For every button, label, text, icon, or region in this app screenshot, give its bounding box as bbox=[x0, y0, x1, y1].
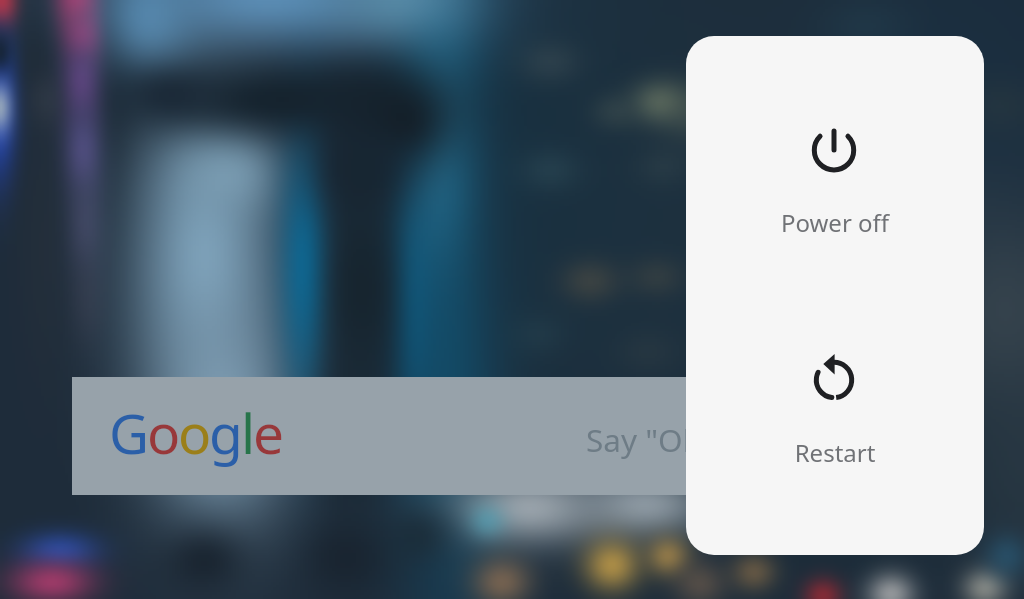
staticText: Power off bbox=[686, 206, 984, 239]
button[interactable]: Power off bbox=[686, 36, 984, 296]
button[interactable]: G bbox=[72, 377, 892, 495]
staticText: o bbox=[178, 395, 209, 470]
staticText: G bbox=[109, 395, 147, 470]
staticText: g bbox=[209, 395, 241, 470]
staticText: l bbox=[241, 395, 253, 470]
staticText: Restart bbox=[686, 436, 984, 469]
staticText: Say "Ok Google" bbox=[586, 418, 827, 461]
button[interactable]: Restart bbox=[686, 296, 984, 555]
staticText: e bbox=[253, 395, 282, 470]
staticText: o bbox=[147, 395, 178, 470]
